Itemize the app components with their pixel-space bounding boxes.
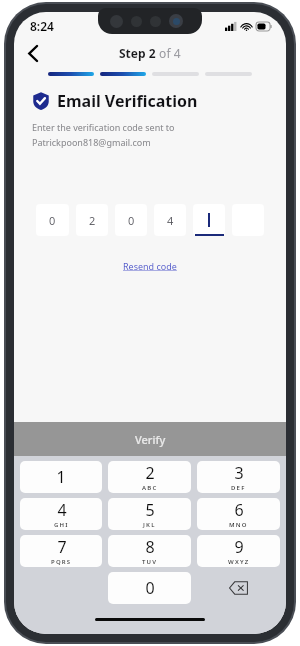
staticText: 2 bbox=[89, 213, 96, 228]
staticText: GHI bbox=[54, 521, 69, 529]
button[interactable]: 1 bbox=[20, 461, 102, 493]
staticText: WXYZ bbox=[228, 558, 250, 566]
staticText: TUV bbox=[142, 558, 158, 566]
staticText: Step 2 bbox=[119, 45, 156, 61]
staticText: 1 bbox=[56, 466, 66, 488]
button[interactable] bbox=[193, 204, 225, 236]
staticText: 6 bbox=[234, 499, 244, 521]
button[interactable]: 8 bbox=[108, 535, 191, 567]
button[interactable]: Resend code bbox=[119, 258, 181, 274]
staticText: Enter the verification code sent to bbox=[32, 121, 175, 133]
button[interactable]: 3 bbox=[197, 461, 280, 493]
button[interactable]: 0 bbox=[108, 572, 191, 604]
staticText: 0 bbox=[128, 213, 135, 228]
staticText: DEF bbox=[231, 484, 246, 492]
staticText: 0 bbox=[145, 577, 155, 599]
button[interactable]: 5 bbox=[108, 498, 191, 530]
button[interactable]: 4 bbox=[154, 204, 186, 236]
staticText: PQRS bbox=[51, 558, 72, 566]
staticText: 5 bbox=[145, 499, 155, 521]
staticText: 8 bbox=[145, 536, 155, 558]
staticText: Verify bbox=[135, 432, 166, 447]
staticText: 3 bbox=[234, 462, 244, 484]
button[interactable]: 0 bbox=[36, 204, 69, 236]
staticText: 0 bbox=[49, 213, 56, 228]
staticText: JKL bbox=[143, 521, 156, 529]
staticText: Patrickpoon818@gmail.com bbox=[32, 136, 151, 148]
button[interactable]: 9 bbox=[197, 535, 280, 567]
staticText: Resend code bbox=[123, 260, 177, 272]
staticText: 4 bbox=[167, 213, 174, 228]
staticText: MNO bbox=[229, 521, 248, 529]
button[interactable]: Verify bbox=[14, 422, 286, 456]
staticText: 9 bbox=[234, 536, 244, 558]
staticText: 4 bbox=[57, 499, 67, 521]
staticText: ABC bbox=[142, 484, 158, 492]
staticText: 8:24 bbox=[30, 18, 54, 34]
button[interactable]: 7 bbox=[20, 535, 102, 567]
staticText: Email Verification bbox=[57, 90, 198, 112]
button[interactable]: Back bbox=[18, 40, 48, 66]
button[interactable]: 4 bbox=[20, 498, 102, 530]
staticText: 7 bbox=[57, 536, 67, 558]
staticText: 2 bbox=[145, 462, 155, 484]
button[interactable]: 2 bbox=[76, 204, 108, 236]
button[interactable]: Backspace bbox=[194, 572, 283, 604]
button[interactable]: 6 bbox=[197, 498, 280, 530]
button[interactable]: 0 bbox=[115, 204, 147, 236]
staticText: of 4 bbox=[156, 45, 181, 61]
button[interactable]: 2 bbox=[108, 461, 191, 493]
